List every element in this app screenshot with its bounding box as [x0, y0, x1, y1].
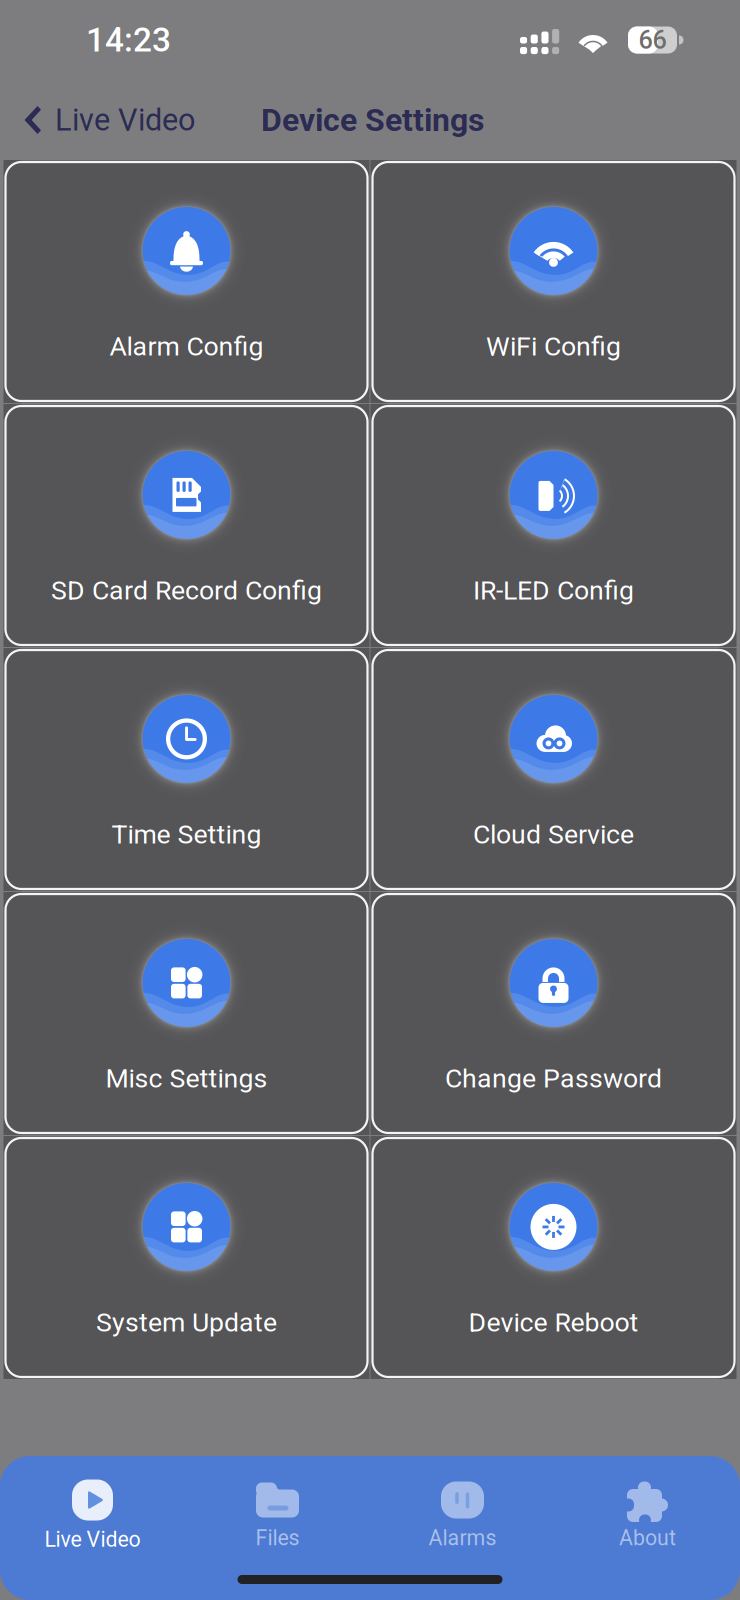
button[interactable]: Device Reboot	[370, 1136, 736, 1379]
staticText: 14:23	[86, 20, 171, 60]
staticText: Misc Settings	[105, 1063, 267, 1094]
button[interactable]: Cloud Service	[370, 648, 736, 891]
staticText: Change Password	[445, 1063, 662, 1094]
staticText: System Update	[96, 1307, 277, 1338]
staticText: IR-LED Config	[473, 575, 634, 606]
staticText: Live Video	[55, 102, 195, 138]
staticText: 66	[638, 25, 666, 55]
staticText: WiFi Config	[486, 331, 621, 362]
staticText: Cloud Service	[473, 819, 634, 850]
button[interactable]: Time Setting	[3, 648, 369, 891]
button[interactable]: Misc Settings	[3, 892, 369, 1135]
staticText: Files	[255, 1525, 299, 1550]
button[interactable]: IR-LED Config	[370, 404, 736, 647]
button[interactable]: SD Card Record Config	[3, 404, 369, 647]
staticText: Device Reboot	[468, 1307, 638, 1338]
button[interactable]: About	[555, 1469, 740, 1561]
button[interactable]: Change Password	[370, 892, 736, 1135]
button[interactable]: Live Video	[0, 92, 195, 148]
staticText: Live Video	[44, 1527, 140, 1552]
staticText: SD Card Record Config	[51, 575, 322, 606]
staticText: Alarm Config	[109, 331, 263, 362]
button[interactable]: Files	[185, 1469, 370, 1561]
button[interactable]: Alarms	[370, 1469, 555, 1561]
button[interactable]: WiFi Config	[370, 160, 736, 403]
staticText: Alarms	[428, 1525, 496, 1550]
button[interactable]: Live Video	[0, 1469, 185, 1561]
staticText: Device Settings	[261, 101, 484, 139]
button[interactable]: Alarm Config	[3, 160, 369, 403]
staticText: About	[619, 1525, 676, 1550]
staticText: Time Setting	[111, 819, 261, 850]
button[interactable]: System Update	[3, 1136, 369, 1379]
